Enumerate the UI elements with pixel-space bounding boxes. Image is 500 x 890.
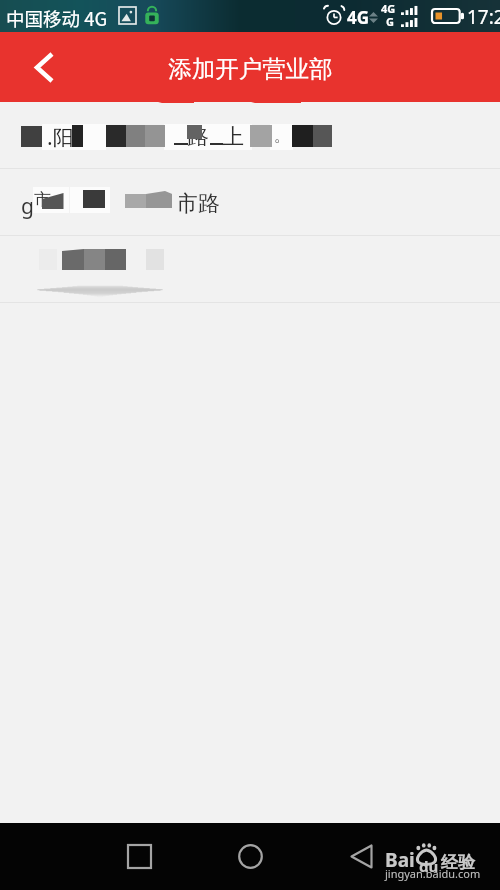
staticText: 市 (34, 189, 51, 210)
staticText: jingyan.baidu.com (385, 866, 481, 881)
button[interactable]: g (0, 169, 500, 235)
button[interactable]: Back (350, 844, 373, 869)
button[interactable]: Back (17, 40, 71, 94)
staticText: Bai (385, 847, 415, 873)
staticText: 市路 (176, 190, 220, 218)
staticText: G (386, 14, 394, 29)
staticText: g (21, 192, 34, 221)
button[interactable]: .阳 (0, 102, 500, 168)
staticText: 4G (347, 6, 370, 29)
staticText: 17:27 (467, 4, 500, 30)
button[interactable]: Recents (128, 845, 151, 868)
staticText: 。 (274, 126, 290, 146)
button[interactable]: Home (238, 844, 263, 869)
staticText: 经验 (441, 852, 475, 873)
staticText: du (419, 856, 439, 876)
staticText: 上 (222, 123, 244, 151)
staticText: .阳 (47, 123, 74, 152)
staticText: 添加开户营业部 (168, 54, 333, 84)
button[interactable] (0, 236, 500, 302)
staticText: 路 (187, 123, 209, 151)
staticText: 4G (381, 1, 396, 16)
staticText: 中国移动 4G (6, 5, 108, 32)
